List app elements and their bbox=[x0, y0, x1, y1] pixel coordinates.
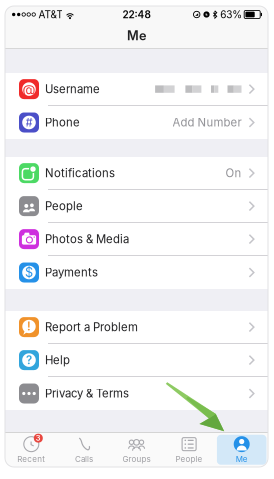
staticText: Me bbox=[236, 454, 248, 464]
button[interactable]: Calls bbox=[58, 433, 110, 467]
button[interactable]: People bbox=[5, 190, 268, 223]
staticText: @ bbox=[22, 81, 35, 97]
staticText: On bbox=[225, 166, 241, 180]
button[interactable]: ? bbox=[5, 344, 268, 377]
button[interactable]: Me bbox=[215, 433, 268, 467]
staticText: Username bbox=[45, 82, 100, 96]
button[interactable]: # bbox=[5, 106, 268, 139]
button[interactable]: Privacy & Terms bbox=[5, 377, 268, 410]
staticText: Phone bbox=[45, 116, 80, 129]
staticText: ! bbox=[27, 319, 31, 333]
staticText: People bbox=[176, 454, 203, 464]
button[interactable]: $ bbox=[5, 256, 268, 289]
staticText: 63% bbox=[220, 8, 242, 21]
button[interactable]: Groups bbox=[110, 433, 163, 467]
staticText: Help bbox=[45, 353, 70, 367]
staticText: Privacy & Terms bbox=[45, 387, 129, 400]
staticText: Notifications bbox=[45, 166, 115, 180]
staticText: Calls bbox=[75, 454, 93, 464]
staticText: Report a Problem bbox=[45, 320, 138, 334]
staticText: ? bbox=[26, 353, 32, 367]
button[interactable]: 3 bbox=[5, 433, 58, 467]
button[interactable]: Notifications bbox=[5, 157, 268, 190]
button[interactable]: ! bbox=[5, 311, 268, 344]
staticText: 3 bbox=[36, 434, 41, 443]
button[interactable]: @ bbox=[5, 73, 268, 106]
staticText: Photos & Media bbox=[45, 232, 129, 246]
staticText: $ bbox=[25, 265, 33, 280]
staticText: 22:48 bbox=[122, 8, 150, 21]
staticText: Recent bbox=[17, 454, 45, 464]
staticText: Me bbox=[127, 28, 146, 43]
staticText: # bbox=[25, 116, 32, 129]
staticText: People bbox=[45, 199, 83, 213]
staticText: Add Number bbox=[172, 116, 241, 129]
staticText: Payments bbox=[45, 266, 98, 279]
button[interactable]: People bbox=[163, 433, 215, 467]
staticText: AT&T bbox=[38, 8, 62, 21]
staticText: Groups bbox=[122, 454, 150, 464]
button[interactable]: Photos & Media bbox=[5, 223, 268, 256]
